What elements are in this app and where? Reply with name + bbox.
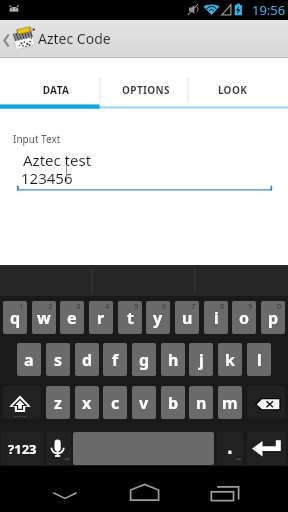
staticText: b: [168, 392, 179, 414]
button[interactable]: q: [3, 301, 27, 334]
button[interactable]: v: [132, 386, 156, 419]
staticText: t: [127, 307, 134, 329]
button[interactable]: h: [161, 343, 185, 376]
button[interactable]: m: [218, 386, 242, 419]
button[interactable]: n: [189, 386, 213, 419]
button[interactable]: [217, 432, 243, 465]
staticText: q: [10, 307, 21, 329]
button[interactable]: u: [175, 301, 199, 334]
button[interactable]: y: [146, 301, 170, 334]
button[interactable]: b: [161, 386, 185, 419]
button[interactable]: Enter: [247, 432, 286, 465]
staticText: Input Text: [13, 132, 61, 146]
button[interactable]: s: [46, 343, 70, 376]
staticText: n: [196, 392, 207, 414]
button[interactable]: t: [118, 301, 142, 334]
staticText: 19:56: [252, 1, 286, 19]
button[interactable]: LOOK: [188, 58, 288, 104]
staticText: h: [168, 349, 179, 371]
staticText: u: [182, 307, 193, 329]
staticText: o: [239, 307, 250, 329]
staticText: c: [111, 392, 120, 414]
staticText: Aztec Code: [38, 29, 111, 48]
button[interactable]: w: [32, 301, 56, 334]
staticText: 1: [19, 301, 24, 311]
staticText: 6: [162, 301, 167, 311]
button[interactable]: c: [103, 386, 127, 419]
staticText: w: [37, 307, 51, 329]
staticText: 4: [105, 301, 110, 311]
button[interactable]: g: [132, 343, 156, 376]
button[interactable]: OPTIONS: [100, 58, 188, 104]
staticText: OPTIONS: [102, 83, 190, 97]
button[interactable]: Voice input: [46, 432, 71, 465]
staticText: x: [82, 392, 92, 414]
staticText: v: [139, 392, 149, 414]
staticText: m: [222, 392, 238, 414]
button[interactable]: ?123: [1, 432, 43, 465]
staticText: j: [199, 349, 204, 371]
button[interactable]: Shift: [3, 386, 41, 419]
button[interactable]: x: [75, 386, 99, 419]
staticText: p: [268, 307, 279, 329]
button[interactable]: Recent apps: [190, 466, 260, 512]
staticText: 5: [134, 301, 139, 311]
staticText: 7: [191, 301, 196, 311]
button[interactable]: d: [75, 343, 99, 376]
button[interactable]: k: [218, 343, 242, 376]
button[interactable]: i: [204, 301, 228, 334]
staticText: 0: [277, 301, 282, 311]
staticText: i: [214, 307, 219, 329]
staticText: DATA: [6, 83, 106, 97]
staticText: d: [82, 349, 93, 371]
button[interactable]: r: [89, 301, 113, 334]
button[interactable]: f: [103, 343, 127, 376]
button[interactable]: j: [189, 343, 213, 376]
staticText: 8: [220, 301, 225, 311]
staticText: 3: [76, 301, 81, 311]
staticText: Aztec test: [23, 150, 92, 170]
button[interactable]: z: [46, 386, 70, 419]
staticText: 123456: [21, 168, 73, 188]
staticText: e: [67, 307, 77, 329]
staticText: 2: [48, 301, 53, 311]
button[interactable]: e: [60, 301, 84, 334]
staticText: LOOK: [182, 83, 283, 97]
button[interactable]: l: [247, 343, 271, 376]
staticText: l: [257, 349, 262, 371]
button[interactable]: Hide keyboard: [30, 466, 100, 512]
staticText: f: [112, 349, 119, 371]
button[interactable]: Aztec Code: [0, 20, 288, 58]
button[interactable]: a: [17, 343, 41, 376]
staticText: r: [97, 307, 105, 329]
staticText: ?123: [8, 440, 37, 458]
staticText: k: [225, 349, 235, 371]
staticText: s: [54, 349, 63, 371]
button[interactable]: Home: [110, 466, 180, 512]
staticText: 9: [248, 301, 253, 311]
staticText: y: [153, 307, 163, 329]
button[interactable]: o: [232, 301, 256, 334]
button[interactable]: Delete: [247, 386, 285, 419]
button[interactable]: DATA: [0, 58, 100, 104]
staticText: g: [139, 349, 150, 371]
staticText: z: [54, 392, 62, 414]
staticText: a: [24, 349, 34, 371]
button[interactable]: p: [261, 301, 285, 334]
